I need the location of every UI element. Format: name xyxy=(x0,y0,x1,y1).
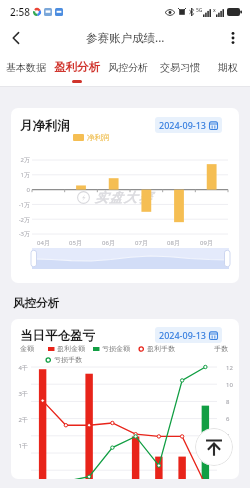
button[interactable]: 期权 xyxy=(206,52,250,86)
button[interactable]: 风控分析 xyxy=(102,52,154,86)
staticText: 2024-09-13 xyxy=(159,329,206,341)
staticText: 实盘大赛 xyxy=(94,189,152,205)
staticText: 盈利分析 xyxy=(54,60,100,74)
staticText: 3千 xyxy=(13,390,28,398)
staticText: 12 xyxy=(226,364,239,372)
staticText: 参赛账户成绩... xyxy=(86,30,165,46)
button[interactable]: 盈利分析 xyxy=(51,52,102,86)
button[interactable]: 交易习惯 xyxy=(154,52,206,86)
staticText: 风控分析 xyxy=(108,61,148,74)
staticText: 2万 xyxy=(12,156,30,164)
staticText: 1千 xyxy=(13,442,28,450)
staticText: 基本数据 xyxy=(6,61,46,74)
staticText: 金额 xyxy=(20,344,34,353)
staticText: 1万 xyxy=(12,171,30,179)
staticText: 04月 xyxy=(22,239,65,247)
staticText: 4 xyxy=(226,432,239,440)
staticText: 09月 xyxy=(185,239,228,247)
button[interactable]: More options xyxy=(221,26,245,50)
button[interactable]: 2024-09-13 xyxy=(155,117,222,133)
staticText: 2千 xyxy=(13,416,28,424)
staticText: 2024-09-13 xyxy=(159,119,206,131)
staticText: 07月 xyxy=(120,239,163,247)
staticText: 4千 xyxy=(13,364,28,372)
staticText: 当日平仓盈亏 xyxy=(20,328,95,344)
staticText: 0 xyxy=(12,186,30,194)
staticText: 5G xyxy=(196,7,203,14)
staticText: 6 xyxy=(226,415,239,423)
staticText: 盈利手数 xyxy=(147,344,175,353)
button[interactable]: Back xyxy=(4,26,28,50)
staticText: -1万 xyxy=(12,201,30,209)
staticText: 期权 xyxy=(218,61,238,74)
staticText: -3万 xyxy=(12,230,30,238)
staticText: x xyxy=(213,7,216,14)
staticText: 盈利金额 xyxy=(57,344,85,353)
staticText: -2万 xyxy=(12,216,30,224)
button[interactable]: Back to top xyxy=(195,428,233,466)
staticText: 10 xyxy=(226,381,239,389)
button[interactable]: 2024-09-13 xyxy=(155,327,222,343)
staticText: 亏损金额 xyxy=(102,344,130,353)
staticText: 06月 xyxy=(87,239,130,247)
staticText: 净利润 xyxy=(87,133,110,142)
staticText: 风控分析 xyxy=(13,296,59,310)
staticText: 08月 xyxy=(152,239,195,247)
staticText: 2 xyxy=(226,450,239,458)
staticText: 手数 xyxy=(214,344,228,353)
staticText: 05月 xyxy=(54,239,97,247)
staticText: 2:58 xyxy=(10,5,30,19)
staticText: 交易习惯 xyxy=(160,61,200,74)
staticText: 月净利润 xyxy=(20,118,70,134)
staticText: 8 xyxy=(226,398,239,406)
button[interactable]: 基本数据 xyxy=(0,52,51,86)
staticText: 亏损手数 xyxy=(54,355,82,364)
